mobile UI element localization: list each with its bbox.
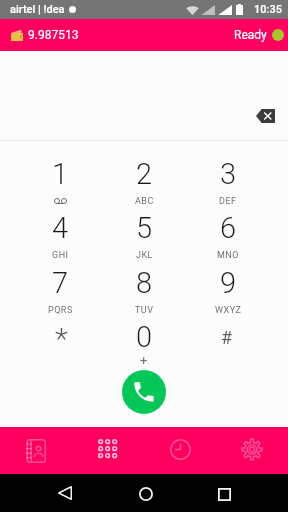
staticText: TUV — [135, 305, 154, 316]
button[interactable]: Recents — [144, 427, 216, 474]
button[interactable] — [102, 205, 186, 257]
button[interactable]: Home — [126, 474, 163, 512]
staticText: + — [140, 353, 148, 367]
button[interactable]: 9.987513 — [11, 28, 79, 42]
staticText: * — [55, 321, 68, 353]
button[interactable] — [102, 151, 186, 203]
button[interactable] — [186, 314, 270, 366]
button[interactable]: Recents — [205, 474, 243, 512]
button[interactable]: Ready — [234, 28, 284, 42]
staticText: 4 — [52, 211, 69, 243]
staticText: WXYZ — [215, 305, 242, 316]
button[interactable]: Settings — [216, 427, 288, 474]
staticText: 3 — [220, 157, 237, 189]
staticText: 9 — [220, 266, 237, 298]
staticText: DEF — [219, 196, 237, 207]
staticText: 6 — [220, 211, 237, 243]
staticText: GHI — [52, 250, 69, 261]
button[interactable] — [18, 151, 102, 203]
staticText: Ready — [234, 28, 267, 42]
staticText: JKL — [136, 250, 153, 261]
button[interactable] — [186, 151, 270, 203]
button[interactable] — [18, 260, 102, 312]
button[interactable]: Contacts — [0, 427, 72, 474]
staticText: 0 — [136, 320, 153, 352]
button[interactable] — [186, 260, 270, 312]
staticText: PQRS — [48, 305, 73, 316]
button[interactable] — [18, 314, 102, 366]
staticText: MNO — [217, 250, 239, 261]
button[interactable]: Backspace — [251, 101, 280, 130]
staticText: 9.987513 — [28, 28, 79, 42]
staticText: 2 — [136, 157, 153, 189]
staticText: 8 — [136, 266, 153, 298]
button[interactable] — [102, 314, 186, 366]
button[interactable] — [102, 260, 186, 312]
staticText: ABC — [135, 196, 154, 207]
button[interactable]: Call — [122, 370, 166, 414]
button[interactable] — [186, 205, 270, 257]
staticText: 1 — [52, 157, 69, 189]
staticText: airtel | !dea — [10, 3, 65, 16]
button[interactable]: Back — [46, 474, 83, 512]
button[interactable]: Dialpad — [72, 427, 144, 474]
staticText: 5 — [136, 211, 153, 243]
staticText: # — [221, 327, 233, 348]
staticText: 10:35 — [254, 3, 282, 16]
button[interactable] — [18, 205, 102, 257]
staticText: 7 — [52, 266, 69, 298]
